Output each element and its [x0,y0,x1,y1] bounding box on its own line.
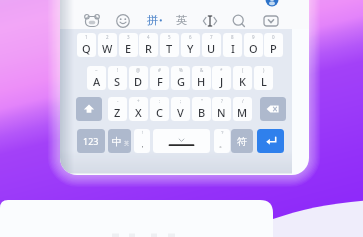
staticText: / [242,98,244,104]
button[interactable]: @ [129,66,148,90]
staticText: 拼 [147,13,158,27]
staticText: X [135,105,142,120]
staticText: A [93,74,101,89]
staticText: 符 [237,135,247,148]
staticText: Q [82,41,91,56]
staticText: ; [180,98,182,104]
staticText: # [158,67,161,73]
button[interactable]: 6 [181,33,200,57]
staticText: 3 [127,34,130,40]
staticText: J [220,74,224,89]
staticText: * [220,67,223,73]
staticText: E [125,41,132,56]
staticText: K [239,74,246,89]
staticText: O [249,41,258,56]
staticText: 9 [252,34,255,40]
button[interactable]: 2 [98,33,117,57]
staticText: 英 [176,13,187,27]
staticText: 4 [147,34,150,40]
button[interactable]: 符 [231,129,253,153]
staticText: ~ [95,67,98,73]
staticText: I [231,41,235,56]
button[interactable]: ! [108,66,127,90]
staticText: 中 [112,135,122,148]
button[interactable]: Backspace [260,97,286,121]
staticText: ？ [220,130,225,136]
button[interactable]: Search [228,10,250,32]
staticText: H [197,74,206,89]
button[interactable]: ) [254,66,273,90]
button[interactable]: 中 [108,129,131,153]
staticText: 6 [189,34,192,40]
staticText: ? [221,98,223,104]
staticText: W [102,41,113,56]
staticText: + [137,98,140,104]
button[interactable]: 5 [160,33,179,57]
button[interactable]: 8 [223,33,242,57]
button[interactable]: * [212,66,231,90]
button[interactable]: 英 [170,9,192,31]
button[interactable]: ~ [87,66,106,90]
staticText: 0 [272,34,275,40]
button[interactable]: 0 [264,33,283,57]
button[interactable]: ( [233,66,252,90]
button[interactable]: 1 [77,33,96,57]
staticText: ! [117,67,119,73]
button[interactable]: - [108,97,127,121]
button[interactable]: Hide keyboard [260,10,282,32]
button[interactable]: Account [265,0,279,7]
button[interactable]: 9 [244,33,263,57]
staticText: ！ [140,130,145,136]
staticText: 7 [210,34,213,40]
button[interactable]: Enter [257,129,284,153]
button[interactable]: + [129,97,148,121]
staticText: G [177,74,185,89]
button[interactable]: Space [153,129,210,153]
staticText: " [201,98,203,104]
staticText: Z [114,105,121,120]
button[interactable]: Shift [76,97,102,121]
button[interactable]: 123 [77,129,105,153]
button[interactable]: 7 [202,33,221,57]
staticText: ) [263,67,265,73]
staticText: T [166,41,173,56]
button[interactable]: ！ [134,129,150,153]
button[interactable]: # [150,66,169,90]
button[interactable]: 4 [139,33,158,57]
button[interactable]: / [233,97,252,121]
staticText: @ [136,67,141,73]
button[interactable]: 拼 [141,9,163,31]
button[interactable]: ？ [214,129,230,153]
staticText: R [145,41,152,56]
button[interactable]: ; [171,97,190,121]
staticText: & [200,67,204,73]
button[interactable]: Stickers [81,10,103,32]
staticText: ， [139,140,146,149]
staticText: 英 [124,140,129,146]
staticText: 5 [168,34,171,40]
staticText: P [270,41,277,56]
staticText: 。 [219,140,226,149]
staticText: D [134,74,143,89]
staticText: 1 [85,34,88,40]
button[interactable]: 3 [119,33,138,57]
button[interactable]: ? [212,97,231,121]
staticText: - [117,98,119,104]
staticText: L [261,74,267,89]
button[interactable]: : [150,97,169,121]
button[interactable]: & [192,66,211,90]
staticText: U [207,41,216,56]
staticText: 8 [231,34,234,40]
button[interactable]: " [192,97,211,121]
staticText: M [237,105,248,120]
button[interactable]: Move cursor [199,10,221,32]
staticText: : [159,98,161,104]
staticText: S [114,74,121,89]
button[interactable]: Emoji [112,10,134,32]
staticText: F [157,74,163,89]
staticText: ( [242,67,244,73]
staticText: B [198,105,206,120]
staticText: N [217,105,226,120]
staticText: Y [187,41,194,56]
button[interactable]: % [171,66,190,90]
